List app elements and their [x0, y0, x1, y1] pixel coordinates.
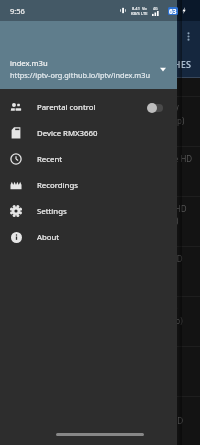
staticText: index.m3u	[10, 58, 48, 68]
staticText: Qatar News Arabic Stream HD (1080p)	[40, 315, 183, 326]
staticText: Parental control	[37, 102, 96, 113]
button[interactable]: Recent	[0, 146, 177, 172]
button[interactable]: Device RMX3660	[0, 120, 177, 146]
button[interactable]: About	[0, 224, 177, 250]
staticText: Beirut Live Arabic Stream HD (1020p)	[40, 215, 179, 226]
staticText: Nour Al Sharq Arabic TV Le Monde HD	[40, 253, 183, 264]
staticText: Device RMX3660	[37, 128, 98, 139]
staticText: Recordings	[37, 180, 78, 191]
staticText: Vo	[142, 6, 147, 11]
staticText: LTE	[141, 11, 148, 16]
staticText: 63	[169, 7, 177, 15]
staticText: Music	[40, 430, 60, 440]
button[interactable]: Settings	[0, 198, 177, 224]
staticText: Saudi Sunnah Mecca Channel Live TV	[40, 103, 179, 114]
button[interactable]: More options	[180, 28, 196, 44]
staticText: Gospel Worship Live Stream Music HD	[40, 415, 184, 426]
staticText: 9:56	[10, 6, 25, 16]
staticText: Music	[40, 230, 60, 240]
staticText: 4G	[153, 6, 158, 11]
button[interactable]: Show playlists	[155, 61, 171, 77]
staticText: About	[37, 232, 60, 243]
staticText: Religious	[40, 130, 70, 140]
staticText: Noursat Mariam Beirut Lebanon Live HD	[40, 153, 193, 164]
staticText: https://iptv-org.github.io/iptv/index.m3…	[10, 70, 150, 80]
staticText: Religious	[40, 180, 70, 190]
staticText: KB/S	[131, 11, 140, 16]
staticText: Recent	[37, 154, 63, 165]
staticText: SEARCHES	[145, 58, 192, 70]
staticText: 8.41	[132, 6, 140, 11]
staticText: Tele Lumiere Noursat Charity Radio HD	[40, 203, 187, 214]
button[interactable]: Parental control	[0, 94, 177, 120]
staticText: Makkah Al Mukarramah Stream (720p)	[40, 115, 185, 126]
staticText: Settings	[37, 206, 67, 217]
button[interactable]: Recordings	[0, 172, 177, 198]
